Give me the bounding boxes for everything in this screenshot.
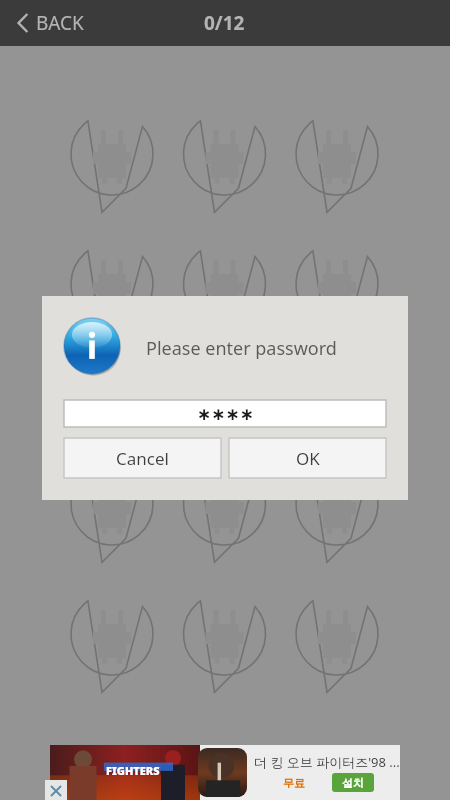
button[interactable]: ∗∗∗∗: [64, 400, 386, 427]
button[interactable]: FIGHTERS: [50, 745, 400, 800]
button[interactable]: BACK: [14, 6, 88, 40]
button[interactable]: Cancel: [64, 438, 221, 478]
staticText: Cancel: [116, 447, 169, 470]
staticText: 더 킹 오브 파이터즈'98 ...: [254, 753, 400, 771]
staticText: BACK: [36, 10, 84, 36]
staticText: Please enter password: [146, 336, 337, 361]
staticText: 무료: [283, 776, 305, 790]
staticText: 설치: [342, 776, 364, 790]
staticText: OK: [296, 447, 320, 470]
staticText: ∗∗∗∗: [197, 404, 254, 424]
button[interactable]: 설치: [332, 773, 374, 792]
staticText: FIGHTERS: [106, 763, 160, 778]
button[interactable]: OK: [229, 438, 386, 478]
staticText: 0/12: [204, 10, 245, 36]
button[interactable]: Close ad: [45, 780, 67, 800]
